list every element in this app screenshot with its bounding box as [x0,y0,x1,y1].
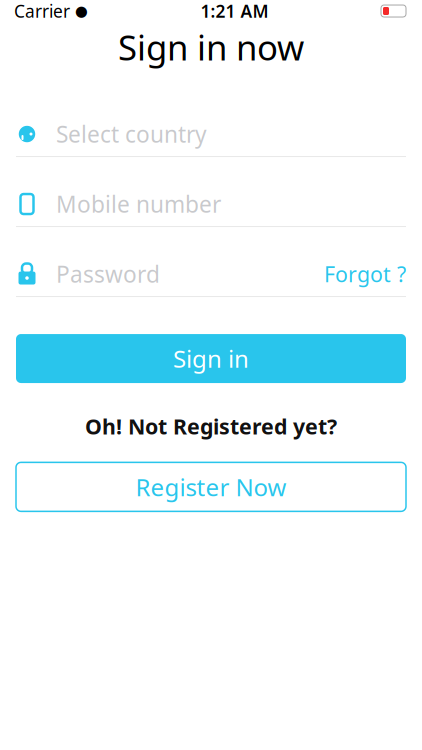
staticText: Password [56,259,160,289]
staticText: Mobile number [56,189,221,219]
staticText: Sign in [173,343,249,374]
button[interactable]: Register Now [16,462,406,511]
button[interactable]: Sign in [16,334,406,383]
staticText: Sign in now [118,24,304,70]
staticText: ● [75,3,88,19]
staticText: Carrier [14,0,70,22]
button[interactable]: Forgot ? [324,260,422,288]
staticText: Select country [56,119,207,149]
staticText: Forgot ? [324,260,406,288]
staticText: Oh! Not Registered yet? [85,412,337,440]
staticText: 1:21 AM [200,0,268,22]
staticText: Register Now [135,471,286,503]
